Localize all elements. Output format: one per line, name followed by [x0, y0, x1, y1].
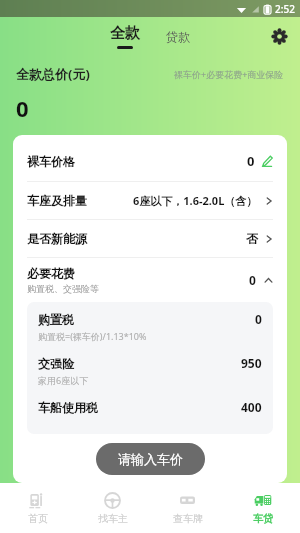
- button[interactable]: 车贷: [225, 483, 300, 533]
- other: 车贷: [254, 491, 272, 509]
- button[interactable]: 交强险: [38, 355, 262, 386]
- other: 查车牌: [179, 492, 196, 509]
- button[interactable]: 首页: [0, 483, 75, 533]
- other: 首页: [29, 492, 46, 509]
- staticText: 车船使用税: [38, 400, 98, 415]
- staticText: 查车牌: [173, 512, 203, 525]
- staticText: 否: [246, 231, 258, 246]
- button[interactable]: Settings: [266, 23, 292, 49]
- staticText: 0: [247, 152, 255, 170]
- staticText: 车贷: [253, 512, 273, 525]
- staticText: 0: [249, 272, 256, 288]
- staticText: 贷款: [166, 29, 190, 44]
- button[interactable]: 全款: [104, 24, 146, 49]
- other: 找车主: [104, 492, 121, 509]
- staticText: 裸车价格: [27, 154, 75, 169]
- staticText: 找车主: [98, 512, 128, 525]
- staticText: 400: [241, 399, 262, 415]
- button[interactable]: 贷款: [160, 25, 196, 48]
- staticText: 裸车价+必要花费+商业保险: [174, 68, 284, 80]
- staticText: 2:52: [275, 2, 295, 16]
- staticText: 车座及排量: [27, 193, 87, 208]
- staticText: 全款总价(元): [16, 65, 90, 83]
- button[interactable]: 购置税: [38, 311, 262, 342]
- staticText: 请输入车价: [118, 451, 183, 467]
- staticText: 6座以下，1.6-2.0L（含）: [133, 193, 258, 208]
- staticText: 950: [241, 355, 262, 371]
- button[interactable]: 车船使用税: [38, 399, 262, 415]
- staticText: 购置税: [38, 312, 74, 327]
- staticText: 必要花费: [27, 266, 75, 281]
- staticText: 首页: [28, 512, 48, 525]
- button[interactable]: 车座及排量: [13, 182, 287, 219]
- staticText: 全款: [110, 24, 140, 43]
- staticText: 是否新能源: [27, 231, 87, 246]
- staticText: 交强险: [38, 356, 74, 371]
- other: Edit: [261, 155, 273, 167]
- button[interactable]: 找车主: [75, 483, 150, 533]
- button[interactable]: 是否新能源: [13, 220, 287, 257]
- staticText: 购置税、交强险等: [27, 283, 99, 294]
- staticText: 0: [255, 311, 262, 327]
- staticText: 购置税=(裸车价)/1.13*10%: [38, 330, 147, 342]
- staticText: 家用6座以下: [38, 374, 89, 386]
- button[interactable]: 查车牌: [150, 483, 225, 533]
- button[interactable]: 必要花费: [13, 258, 287, 302]
- button[interactable]: 裸车价格: [13, 141, 287, 181]
- staticText: 0: [16, 93, 29, 123]
